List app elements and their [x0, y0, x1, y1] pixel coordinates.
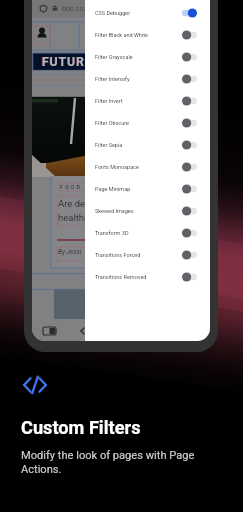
- button[interactable]: Toggle off: [182, 228, 197, 238]
- button[interactable]: Transitions Forced: [85, 244, 210, 266]
- staticText: Custom Filters: [21, 417, 141, 438]
- button[interactable]: Toggle off: [182, 272, 197, 282]
- staticText: Filter Sepia: [95, 142, 123, 148]
- button[interactable]: Skewed Images: [85, 200, 210, 222]
- staticText: By Jessi: [58, 248, 82, 256]
- staticText: Are des healthi: [58, 198, 91, 223]
- button[interactable]: Toggle off: [182, 118, 197, 128]
- button[interactable]: Filter Black and White: [85, 24, 210, 46]
- staticText: Filter Invert: [95, 98, 123, 104]
- staticText: Filter Obscure: [95, 120, 130, 126]
- button[interactable]: Toggle on: [182, 8, 197, 18]
- button[interactable]: Transitions Removed: [85, 266, 210, 288]
- button[interactable]: Toggle off: [182, 250, 197, 260]
- button[interactable]: Toggle off: [182, 206, 197, 216]
- staticText: Filter Intensify: [95, 76, 130, 82]
- button[interactable]: Filter Obscure: [85, 112, 210, 134]
- staticText: CSS Debugger: [95, 10, 131, 16]
- button[interactable]: Toggle off: [182, 30, 197, 40]
- staticText: Fonts Monospace: [95, 164, 139, 170]
- button[interactable]: Fonts Monospace: [85, 156, 210, 178]
- staticText: Transitions Forced: [95, 252, 141, 258]
- button[interactable]: Toggle off: [182, 140, 197, 150]
- button[interactable]: Page Minimap: [85, 178, 210, 200]
- staticText: FUTURE: [41, 54, 93, 69]
- button[interactable]: Filter Sepia: [85, 134, 210, 156]
- staticText: Skewed Images: [95, 208, 134, 214]
- button[interactable]: Toggle off: [182, 96, 197, 106]
- staticText: Transitions Removed: [95, 274, 147, 280]
- staticText: Filter Grayscale: [95, 54, 133, 60]
- button[interactable]: Code: [21, 371, 49, 399]
- button[interactable]: Toggle off: [182, 52, 197, 62]
- staticText: Filter Black and White: [95, 32, 148, 38]
- button[interactable]: Toggle off: [182, 184, 197, 194]
- button[interactable]: Transform 3D: [85, 222, 210, 244]
- button[interactable]: Toggle off: [182, 74, 197, 84]
- staticText: Page Minimap: [95, 186, 131, 192]
- staticText: F O O D: [60, 184, 81, 190]
- staticText: Modify the look of pages with Page Actio…: [21, 449, 195, 476]
- staticText: Transform 3D: [95, 230, 129, 236]
- button[interactable]: Filter Invert: [85, 90, 210, 112]
- button[interactable]: Filter Intensify: [85, 68, 210, 90]
- button[interactable]: CSS Debugger: [85, 2, 210, 24]
- staticText: bbc.co.uk: [62, 4, 94, 12]
- button[interactable]: Filter Grayscale: [85, 46, 210, 68]
- button[interactable]: Toggle off: [182, 162, 197, 172]
- staticText: FUTURE: [42, 54, 93, 69]
